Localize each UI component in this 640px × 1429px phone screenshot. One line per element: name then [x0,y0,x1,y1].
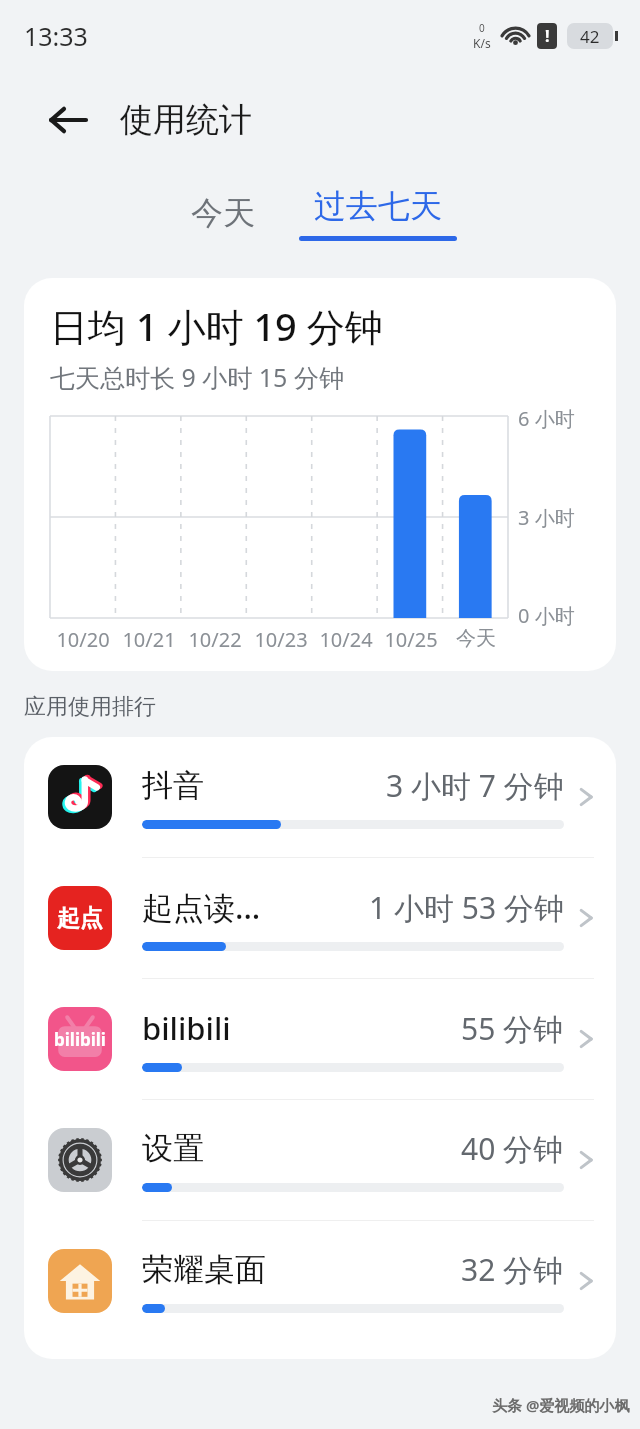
staticText: 今天 [191,193,255,233]
staticText: 10/23 [254,626,308,653]
staticText: 10/20 [56,626,110,653]
staticText: 10/25 [384,626,438,653]
staticText: ! [545,25,550,47]
staticText: 40 分钟 [461,1128,564,1169]
button[interactable]: 过去七天 [289,186,467,241]
button[interactable]: bilibili [24,978,616,1099]
staticText: 0 [479,21,485,35]
staticText: 使用统计 [120,99,252,141]
button[interactable]: Back [40,92,96,148]
staticText: 0 小时 [518,602,575,629]
staticText: 3 小时 [518,504,575,531]
button[interactable]: 今天 [173,185,273,241]
button[interactable]: 抖音 [24,737,616,857]
staticText: 6 小时 [518,405,575,432]
staticText: 13:33 [24,19,88,53]
button[interactable]: 设置 [24,1099,616,1220]
staticText: 应用使用排行 [24,693,156,721]
staticText: 头条 @爱视频的小枫 [492,1395,630,1415]
staticText: 七天总时长 9 小时 15 分钟 [50,360,344,394]
staticText: 荣耀桌面 [142,1250,266,1289]
staticText: 设置 [142,1129,204,1168]
staticText: 10/22 [188,626,242,653]
button[interactable]: 日均 1 小时 19 分钟 [24,278,616,671]
staticText: 起点 [57,904,103,933]
staticText: 55 分钟 [461,1008,564,1049]
staticText: 1 小时 53 分钟 [369,887,564,928]
staticText: bilibili [142,1007,231,1049]
staticText: 10/21 [122,626,176,653]
staticText: bilibili [54,1028,106,1051]
staticText: 过去七天 [314,186,442,226]
staticText: 42 [580,25,600,48]
staticText: 日均 1 小时 19 分钟 [50,300,383,352]
staticText: 3 小时 7 分钟 [386,765,564,806]
button[interactable]: 起点 [24,857,616,978]
button[interactable]: 荣耀桌面 [24,1220,616,1341]
staticText: 起点读... [142,886,261,928]
staticText: 今天 [456,626,496,651]
staticText: 抖音 [142,766,204,805]
staticText: K/s [473,35,491,51]
staticText: 10/24 [319,626,373,653]
staticText: 32 分钟 [461,1249,564,1290]
